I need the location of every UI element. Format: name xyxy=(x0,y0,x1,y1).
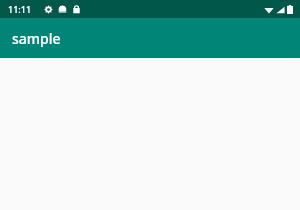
button[interactable]: sample xyxy=(0,18,300,58)
staticText: 11:11 xyxy=(8,3,32,15)
staticText: sample xyxy=(12,29,61,48)
